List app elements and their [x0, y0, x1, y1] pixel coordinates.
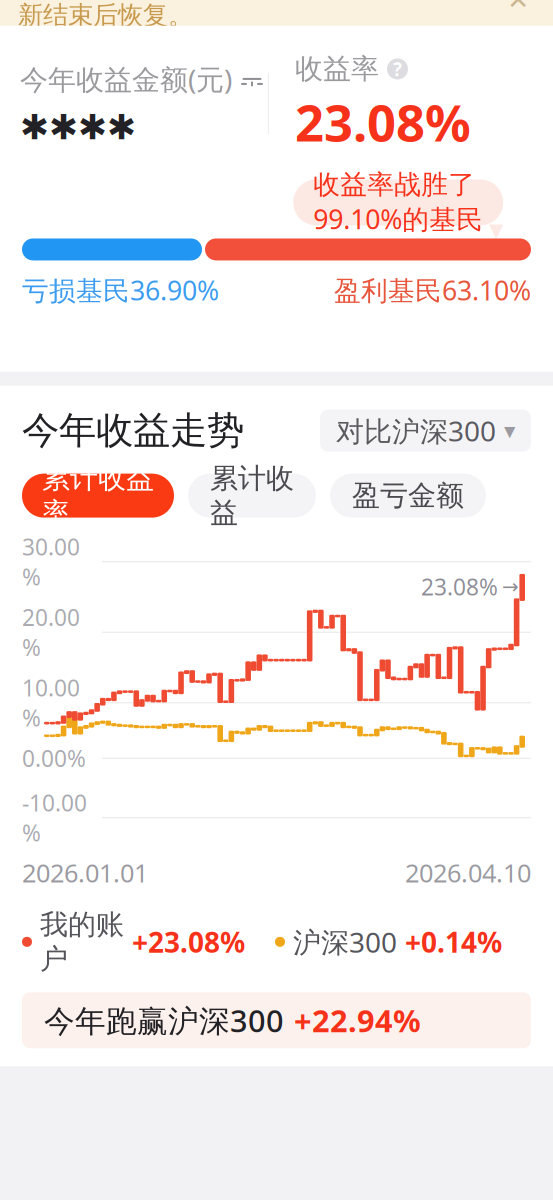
staticText: ? — [393, 57, 402, 81]
staticText: ▼ — [489, 219, 503, 240]
button[interactable]: 累计收益率 — [22, 474, 174, 518]
staticText: 对比沪深300 — [336, 412, 496, 449]
button[interactable]: 对比沪深300 — [320, 410, 531, 452]
staticText: +22.94% — [294, 1000, 421, 1041]
staticText: 20.00% — [22, 602, 80, 662]
staticText: 23.08% — [295, 88, 471, 155]
button[interactable]: 显示收益金额 — [240, 72, 264, 86]
staticText: 2026.04.10 — [405, 856, 531, 889]
staticText: 23.08% — [421, 572, 498, 602]
staticText: +23.08% — [132, 923, 245, 960]
staticText: 今年收益金额(元) — [20, 60, 232, 97]
staticText: 盈利基民63.10% — [334, 272, 531, 308]
staticText: 亏损基民36.90% — [22, 272, 219, 308]
staticText: 今年跑赢沪深300 — [44, 1000, 284, 1041]
staticText: 0.00% — [22, 743, 86, 773]
staticText: 累计收益率 — [42, 461, 154, 530]
staticText: 2026.01.01 — [22, 856, 148, 889]
staticText: +0.14% — [405, 923, 502, 960]
staticText: 今年收益走势 — [22, 408, 244, 454]
button[interactable]: 盈亏金额 — [330, 474, 486, 518]
staticText: → — [502, 575, 519, 598]
staticText: 收益率 — [295, 52, 379, 86]
button[interactable]: 累计收益 — [188, 474, 316, 518]
staticText: -10.00% — [22, 788, 87, 848]
button[interactable]: 关闭提示 — [501, 0, 535, 17]
staticText: 累计收益 — [210, 461, 294, 530]
button[interactable]: 收益率说明 — [387, 57, 408, 81]
staticText: 收益率战胜了99.10%的基民 — [313, 168, 483, 237]
staticText: 盈亏金额 — [352, 478, 464, 513]
staticText: 沪深300 — [293, 923, 397, 960]
staticText: 30.00% — [22, 532, 80, 592]
staticText: ✱✱✱✱ — [20, 107, 136, 147]
staticText: 净值更新中，资产和收益数据会有波动，更新结束后恢复。 — [18, 0, 493, 31]
staticText: ▾ — [504, 418, 515, 443]
staticText: 我的账户 — [40, 907, 124, 976]
staticText: ✕ — [507, 0, 529, 15]
staticText: 10.00% — [22, 673, 80, 733]
